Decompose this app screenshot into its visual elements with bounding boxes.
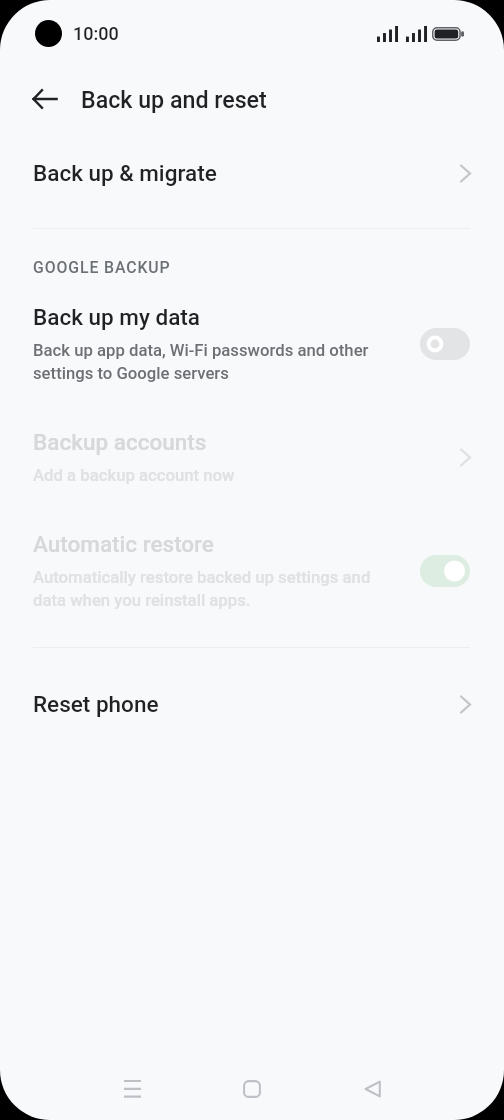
- button[interactable]: Reset phone: [0, 676, 504, 732]
- staticText: Reset phone: [33, 691, 460, 717]
- staticText: Automatic restore: [33, 531, 214, 557]
- button[interactable]: Back up my data: [0, 290, 504, 398]
- button[interactable]: Home: [222, 1059, 282, 1119]
- staticText: Back up my data: [33, 304, 201, 330]
- button[interactable]: Back: [342, 1059, 402, 1119]
- staticText: Back up & migrate: [33, 160, 460, 186]
- button[interactable]: Switch on: [420, 555, 470, 587]
- button[interactable]: Backup accounts: [0, 418, 504, 504]
- staticText: Backup accounts: [33, 429, 207, 455]
- button[interactable]: Switch off: [420, 328, 470, 360]
- button[interactable]: Recent apps: [102, 1059, 162, 1119]
- button[interactable]: Back up & migrate: [0, 145, 504, 201]
- staticText: GOOGLE BACKUP: [33, 258, 171, 277]
- button[interactable]: Automatic restore: [0, 518, 504, 628]
- staticText: Back up app data, Wi-Fi passwords and ot…: [33, 341, 383, 383]
- staticText: Automatically restore backed up settings…: [33, 568, 381, 610]
- button[interactable]: Navigate up: [21, 75, 69, 123]
- staticText: 10:00: [73, 23, 119, 44]
- staticText: Add a backup account now: [33, 466, 235, 486]
- staticText: Back up and reset: [81, 86, 267, 113]
